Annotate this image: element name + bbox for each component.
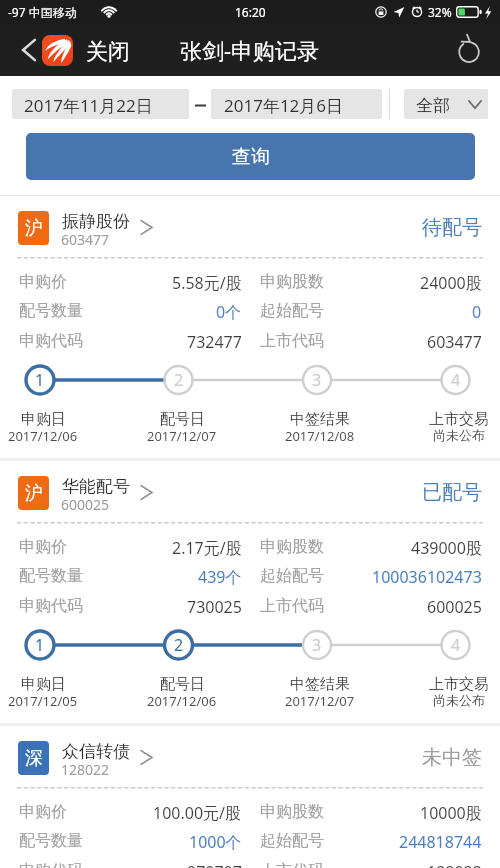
staticText: 申购价	[19, 537, 67, 557]
button[interactable]: 深	[0, 726, 500, 868]
staticText: 配号日	[160, 675, 205, 694]
staticText: 100036102473	[372, 566, 482, 586]
staticText: 2	[174, 634, 184, 656]
staticText: 2017年11月22日	[24, 94, 153, 117]
staticText: 申购价	[19, 272, 67, 292]
staticText: 603477	[427, 331, 482, 351]
staticText: 732477	[187, 331, 242, 351]
staticText: 600025	[427, 596, 482, 616]
staticText: 申购代码	[19, 861, 83, 868]
staticText: 0个	[216, 301, 242, 321]
staticText: 起始配号	[260, 301, 324, 321]
button[interactable]: 2017年11月22日	[12, 89, 189, 119]
button[interactable]: 沪	[0, 461, 500, 726]
staticText: 2017/12/06	[8, 427, 78, 445]
staticText: 0	[472, 301, 482, 321]
staticText: 沪	[25, 217, 43, 240]
staticText: 起始配号	[260, 566, 324, 586]
staticText: 深	[25, 747, 43, 770]
staticText: 2017/12/08	[285, 427, 355, 445]
staticText: 张剑-申购记录	[180, 35, 320, 65]
staticText: 070707	[187, 861, 242, 868]
staticText: 2.17元/股	[172, 537, 242, 557]
staticText: 1	[35, 634, 45, 656]
staticText: 中签结果	[290, 410, 350, 429]
staticText: 上市交易	[429, 410, 489, 429]
staticText: 未中签	[422, 745, 482, 770]
staticText: 关闭	[86, 38, 130, 66]
staticText: 申购股数	[260, 272, 324, 292]
staticText: 32%	[428, 4, 452, 20]
staticText: 600025	[61, 495, 110, 514]
staticText: 4	[451, 369, 461, 391]
staticText: 申购日	[21, 410, 66, 429]
staticText: 3	[312, 634, 322, 656]
staticText: 128022	[427, 861, 482, 868]
staticText: 1	[35, 369, 45, 391]
staticText: 16:20	[235, 4, 266, 20]
staticText: 244818744	[399, 831, 482, 851]
staticText: 申购代码	[19, 331, 83, 351]
staticText: 439个	[198, 566, 242, 586]
staticText: 查询	[232, 145, 270, 169]
staticText: 603477	[61, 230, 110, 249]
staticText: 配号数量	[19, 301, 83, 321]
staticText: 2017/12/06	[147, 692, 217, 710]
staticText: 2017年12月6日	[224, 94, 344, 117]
staticText: 待配号	[422, 215, 482, 240]
staticText: 尚未公布	[433, 692, 485, 708]
staticText: 2	[174, 369, 184, 391]
staticText: 100.00元/股	[153, 802, 242, 822]
staticText: 振静股份	[62, 211, 130, 232]
staticText: -97 中国移动	[8, 4, 77, 20]
staticText: 2017/12/05	[8, 692, 78, 710]
staticText: 128022	[61, 760, 110, 779]
staticText: 上市代码	[260, 596, 324, 616]
staticText: 3	[312, 369, 322, 391]
staticText: 1000个	[189, 831, 242, 851]
staticText: 439000股	[411, 537, 482, 557]
staticText: 配号数量	[19, 831, 83, 851]
button[interactable]: 2017年12月6日	[211, 89, 382, 119]
staticText: 上市代码	[260, 861, 324, 868]
staticText: 申购股数	[260, 802, 324, 822]
staticText: 上市交易	[429, 675, 489, 694]
button[interactable]: 全部	[404, 89, 488, 119]
staticText: 10000股	[420, 802, 482, 822]
staticText: 730025	[187, 596, 242, 616]
staticText: 中签结果	[290, 675, 350, 694]
staticText: 尚未公布	[433, 427, 485, 443]
staticText: 起始配号	[260, 831, 324, 851]
staticText: 2017/12/07	[147, 427, 217, 445]
staticText: 申购股数	[260, 537, 324, 557]
button[interactable]: 查询	[26, 133, 475, 180]
staticText: 24000股	[420, 272, 482, 292]
staticText: 全部	[416, 95, 450, 116]
staticText: 5.58元/股	[172, 272, 242, 292]
button[interactable]: 关闭	[14, 24, 132, 76]
staticText: 配号日	[160, 410, 205, 429]
button[interactable]: 刷新	[450, 31, 488, 69]
staticText: 华能配号	[62, 476, 130, 497]
staticText: 2017/12/07	[285, 692, 355, 710]
staticText: 众信转债	[62, 741, 130, 762]
staticText: 申购日	[21, 675, 66, 694]
button[interactable]: 沪	[0, 196, 500, 461]
staticText: 申购价	[19, 802, 67, 822]
staticText: 申购代码	[19, 596, 83, 616]
staticText: 已配号	[422, 480, 482, 505]
staticText: 4	[451, 634, 461, 656]
staticText: 配号数量	[19, 566, 83, 586]
staticText: 上市代码	[260, 331, 324, 351]
staticText: 沪	[25, 482, 43, 505]
